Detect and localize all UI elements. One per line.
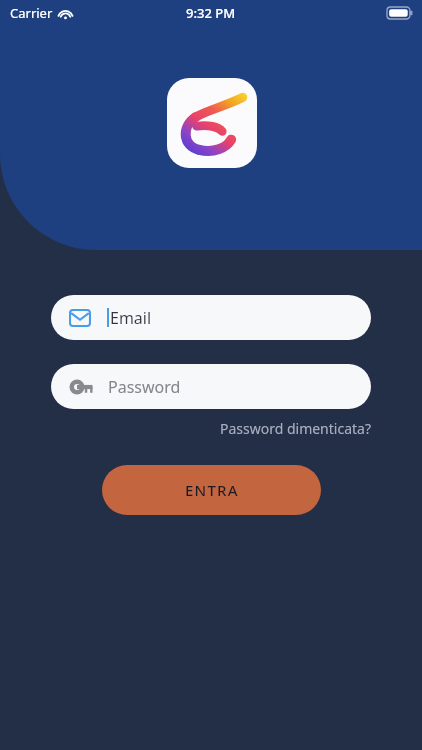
button[interactable]: Password: [51, 364, 371, 409]
staticText: Email: [110, 307, 152, 329]
button[interactable]: Email: [51, 295, 371, 340]
staticText: Carrier: [10, 4, 53, 22]
staticText: ENTRA: [185, 480, 239, 500]
button[interactable]: Password dimenticata?: [180, 416, 371, 440]
button[interactable]: ENTRA: [102, 465, 321, 515]
staticText: 9:32 PM: [186, 4, 236, 22]
staticText: Password dimenticata?: [219, 419, 371, 438]
staticText: Password: [108, 376, 181, 398]
